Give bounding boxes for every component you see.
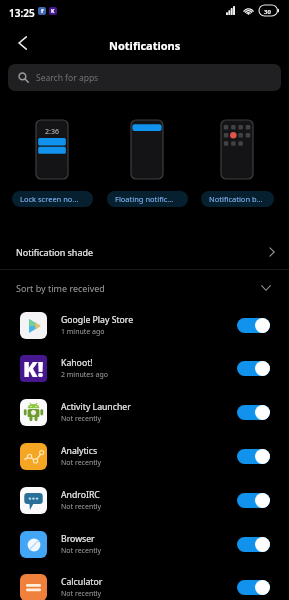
button[interactable]: Analytics xyxy=(0,434,289,478)
staticText: 13:25 xyxy=(9,6,35,20)
staticText: Not recently xyxy=(61,589,102,599)
staticText: Not recently xyxy=(61,502,102,512)
staticText: Browser xyxy=(61,533,95,545)
staticText: 1 minute ago xyxy=(61,327,105,337)
button[interactable]: Calculator xyxy=(0,565,289,600)
button[interactable]: Toggle notifications xyxy=(237,449,270,464)
button[interactable]: Toggle notifications xyxy=(237,405,270,420)
staticText: K xyxy=(51,8,55,15)
staticText: Not recently xyxy=(61,546,102,556)
button[interactable]: Activity Launcher xyxy=(0,390,289,434)
staticText: AndroIRC xyxy=(61,489,100,501)
button[interactable]: AndroIRC xyxy=(0,478,289,522)
button[interactable]: Toggle notifications xyxy=(237,318,270,333)
staticText: Floating notific… xyxy=(115,194,180,204)
staticText: Not recently xyxy=(61,458,102,468)
button[interactable]: Floating notific… xyxy=(101,100,193,207)
staticText: Not recently xyxy=(61,414,102,424)
staticText: 30 xyxy=(264,8,271,16)
staticText: 2:36 xyxy=(45,127,59,137)
button[interactable]: Toggle notifications xyxy=(237,361,270,376)
button[interactable]: Toggle notifications xyxy=(237,580,270,595)
button[interactable]: Toggle notifications xyxy=(237,537,270,552)
staticText: Activity Launcher xyxy=(61,401,131,413)
staticText: Notification shade xyxy=(16,246,94,258)
button[interactable]: K! xyxy=(0,346,289,390)
staticText: Kahoot! xyxy=(61,357,93,369)
staticText: K! xyxy=(23,355,44,382)
staticText: Notification ba… xyxy=(209,194,266,204)
staticText: Sort by time received xyxy=(16,282,105,294)
button[interactable]: Notification shade xyxy=(0,234,289,269)
button[interactable]: Sort by time received xyxy=(0,272,289,303)
staticText: Calculator xyxy=(61,576,103,588)
staticText: Google Play Store xyxy=(61,314,134,326)
staticText: 2 minutes ago xyxy=(61,370,108,380)
staticText: Analytics xyxy=(61,445,98,457)
button[interactable]: Toggle notifications xyxy=(237,493,270,508)
button[interactable]: Search for apps xyxy=(8,64,281,91)
staticText: Lock screen no… xyxy=(20,194,85,204)
button[interactable]: 2:36 xyxy=(6,100,98,207)
button[interactable]: Back xyxy=(8,29,36,57)
staticText: Search for apps xyxy=(36,72,99,84)
staticText: Notifications xyxy=(109,38,181,53)
staticText: f xyxy=(41,7,44,15)
button[interactable]: Google Play Store xyxy=(0,303,289,347)
button[interactable]: Browser xyxy=(0,522,289,566)
button[interactable]: Notification ba… xyxy=(191,100,283,207)
